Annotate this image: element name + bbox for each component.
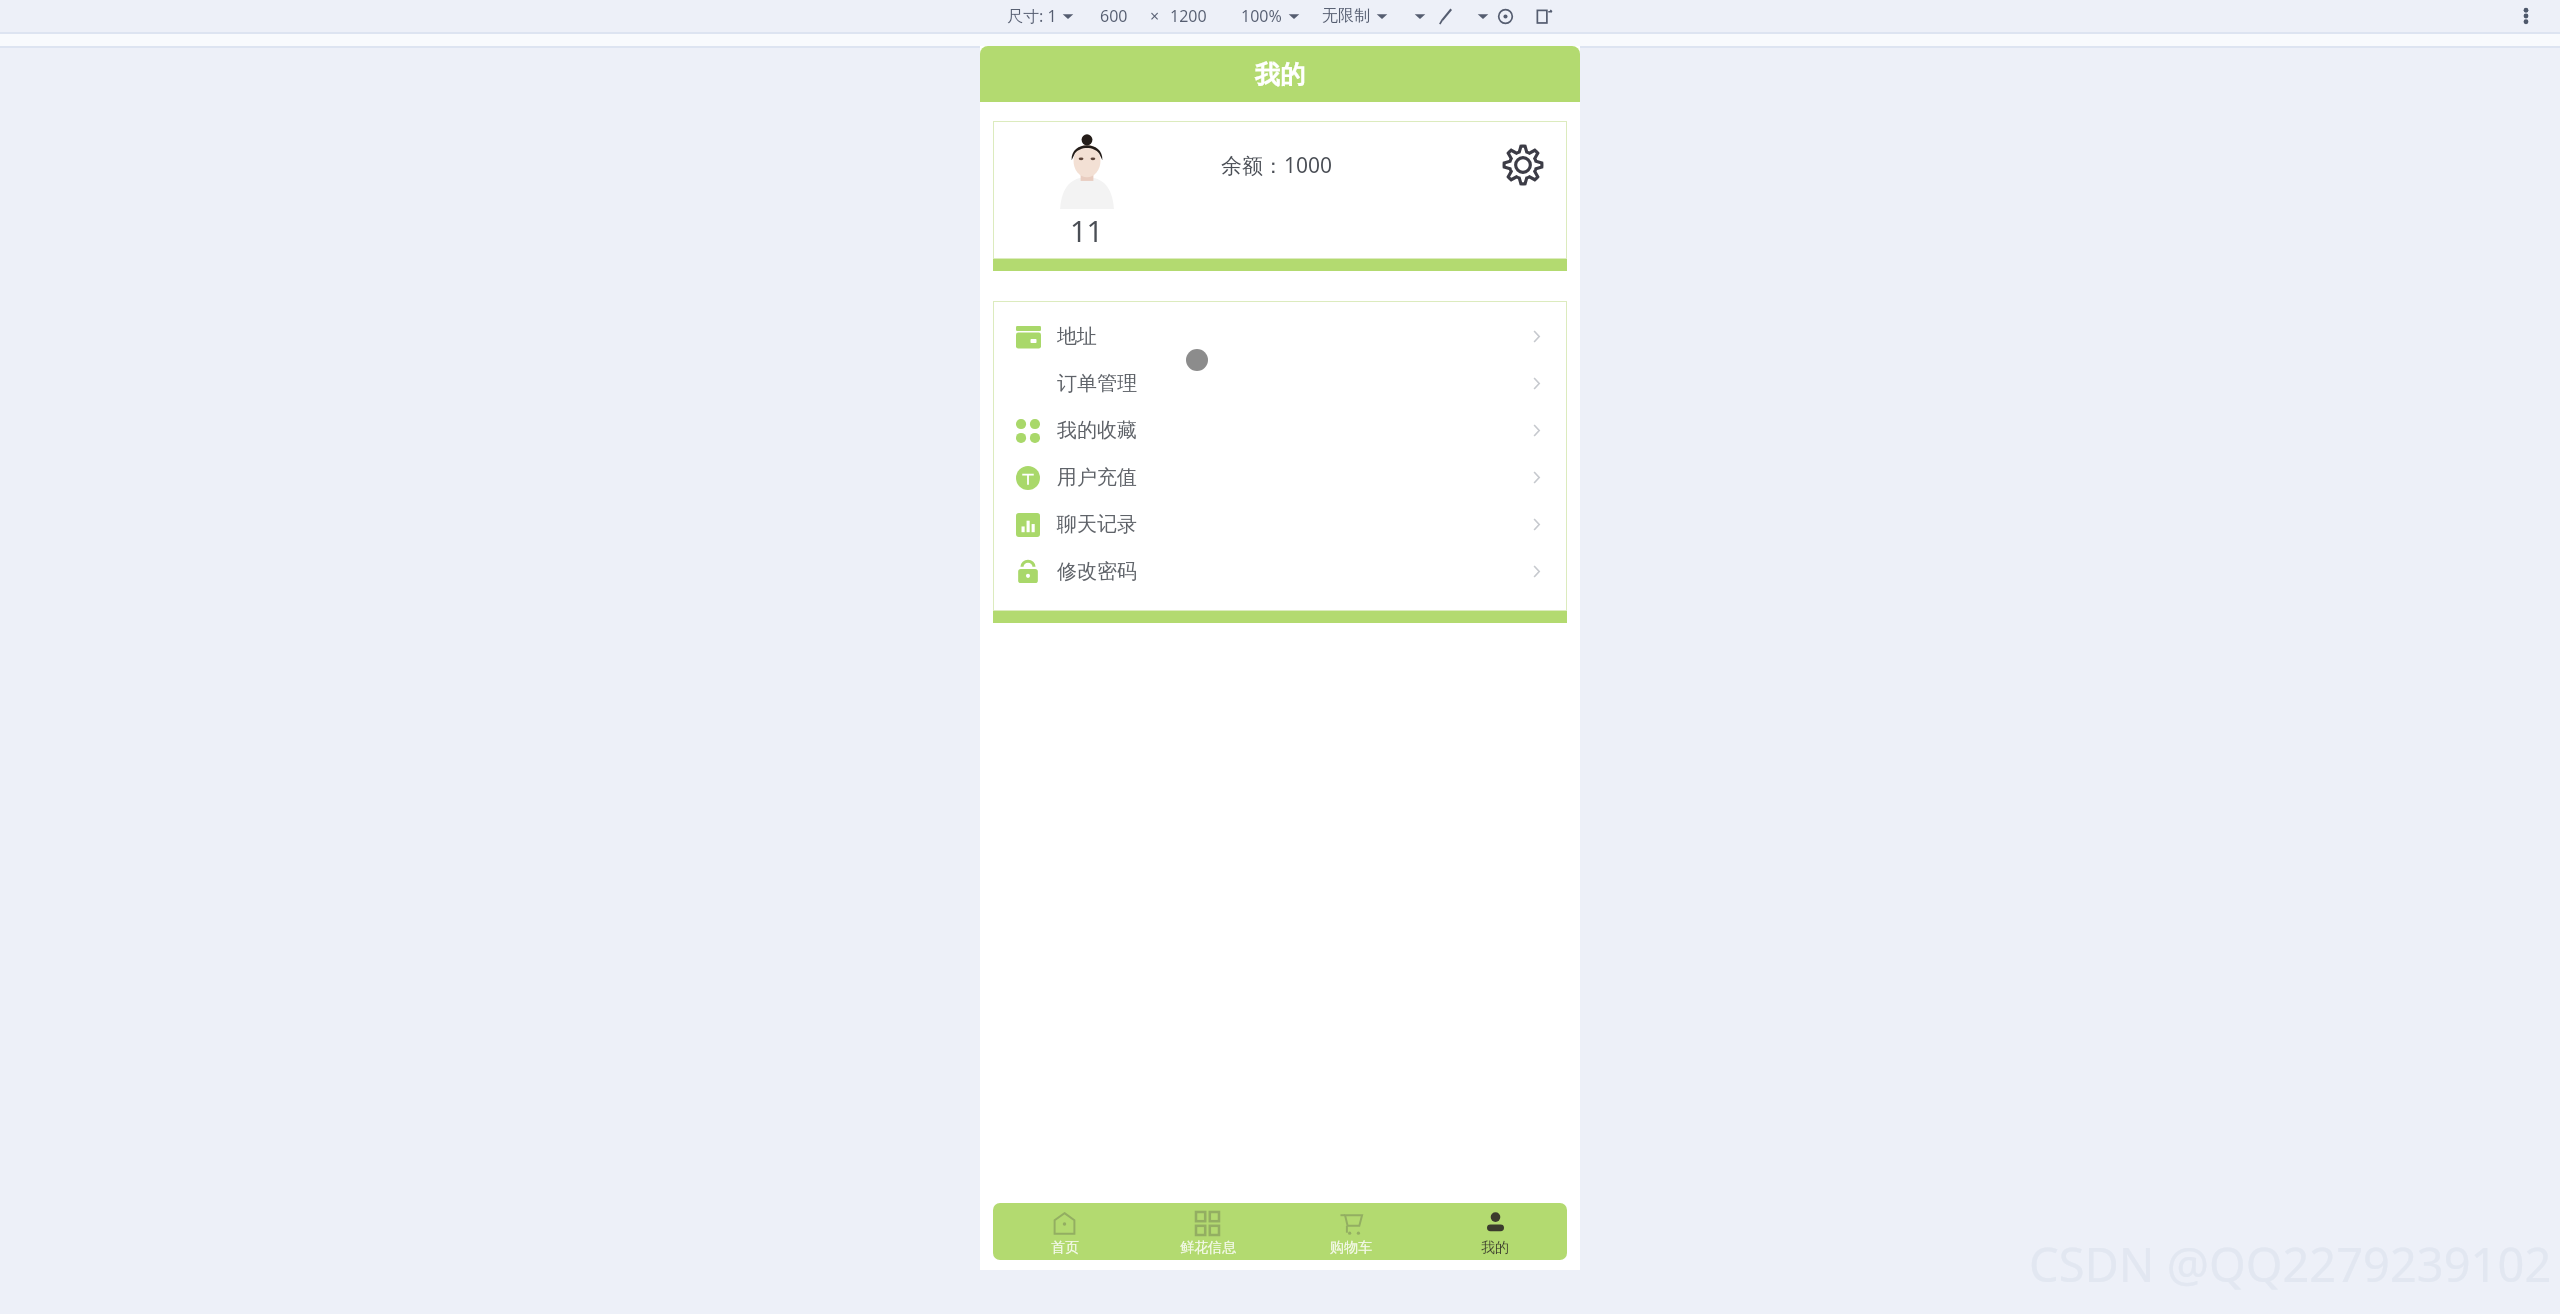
button[interactable]: More options	[2514, 4, 2538, 28]
staticText: 无限制	[1322, 6, 1370, 26]
button[interactable]: Settings	[1499, 141, 1547, 189]
button[interactable]: 我的收藏	[993, 407, 1567, 454]
button[interactable]: 用户充值	[993, 454, 1567, 501]
staticText: 首页	[1051, 1239, 1079, 1257]
staticText: 我的收藏	[1057, 418, 1137, 443]
button[interactable]: 聊天记录	[993, 501, 1567, 548]
button[interactable]: 购物车	[1279, 1203, 1423, 1260]
button[interactable]: 订单管理	[993, 360, 1567, 407]
staticText: 鲜花信息	[1180, 1239, 1236, 1257]
staticText: 地址	[1057, 324, 1097, 349]
staticText: 订单管理	[1057, 371, 1137, 396]
button[interactable]: 地址	[993, 313, 1567, 360]
button[interactable]: 修改密码	[993, 548, 1567, 595]
staticText: 我的	[1255, 59, 1305, 90]
staticText: 我的	[1481, 1239, 1509, 1257]
staticText: ×	[1150, 5, 1160, 27]
staticText: 尺寸: 1	[1007, 5, 1057, 27]
button[interactable]: 我的	[1423, 1203, 1567, 1260]
staticText: 用户充值	[1057, 465, 1137, 490]
staticText: 购物车	[1330, 1239, 1372, 1257]
staticText: 100%	[1241, 5, 1282, 27]
staticText: 600	[1100, 5, 1128, 27]
staticText: 余额：1000	[1221, 151, 1333, 180]
staticText: 聊天记录	[1057, 512, 1137, 537]
button[interactable]: 鲜花信息	[1136, 1203, 1279, 1260]
staticText: 11	[1070, 211, 1104, 250]
staticText: 1200	[1170, 5, 1207, 27]
staticText: CSDN @QQ2279239102	[2029, 1232, 2552, 1296]
button[interactable]: 首页	[993, 1203, 1136, 1260]
staticText: 修改密码	[1057, 559, 1137, 584]
